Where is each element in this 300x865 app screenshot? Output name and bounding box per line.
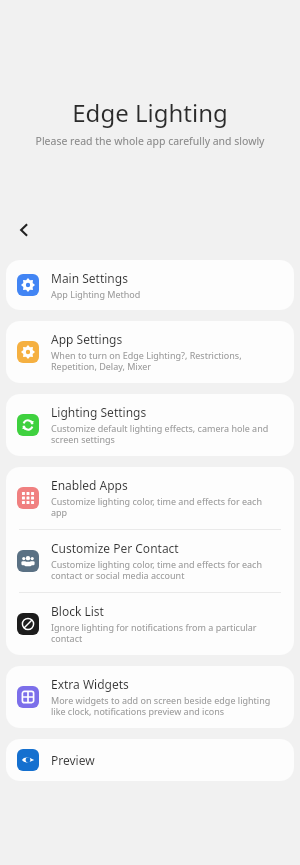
button[interactable]: Extra Widgets [6,666,294,728]
staticText: Please read the whole app carefully and … [0,134,300,148]
staticText: Lighting Settings [51,404,147,420]
staticText: Block List [51,603,104,619]
staticText: Enabled Apps [51,477,128,493]
button[interactable]: Preview [6,739,294,781]
staticText: Customize Per Contact [51,540,179,556]
staticText: Ignore lighting for notifications from a… [51,621,280,645]
button[interactable]: Lighting Settings [6,394,294,456]
button[interactable]: Main Settings [6,260,294,310]
button[interactable]: Block List [6,593,294,655]
staticText: Customize lighting color, time and effec… [51,558,280,582]
staticText: Extra Widgets [51,676,129,692]
staticText: Main Settings [51,270,128,286]
staticText: Preview [51,752,95,768]
staticText: Edge Lighting [0,96,300,129]
staticText: App Settings [51,331,123,347]
staticText: When to turn on Edge Lighting?, Restrict… [51,349,280,373]
button[interactable]: App Settings [6,321,294,383]
staticText: More widgets to add on screen beside edg… [51,694,280,718]
button[interactable]: Customize Per Contact [6,530,294,592]
staticText: Customize lighting color, time and effec… [51,495,280,519]
button[interactable]: Back [8,214,40,246]
button[interactable]: Enabled Apps [6,467,294,529]
staticText: App Lighting Method [51,288,141,300]
staticText: Customize default lighting effects, came… [51,422,280,446]
